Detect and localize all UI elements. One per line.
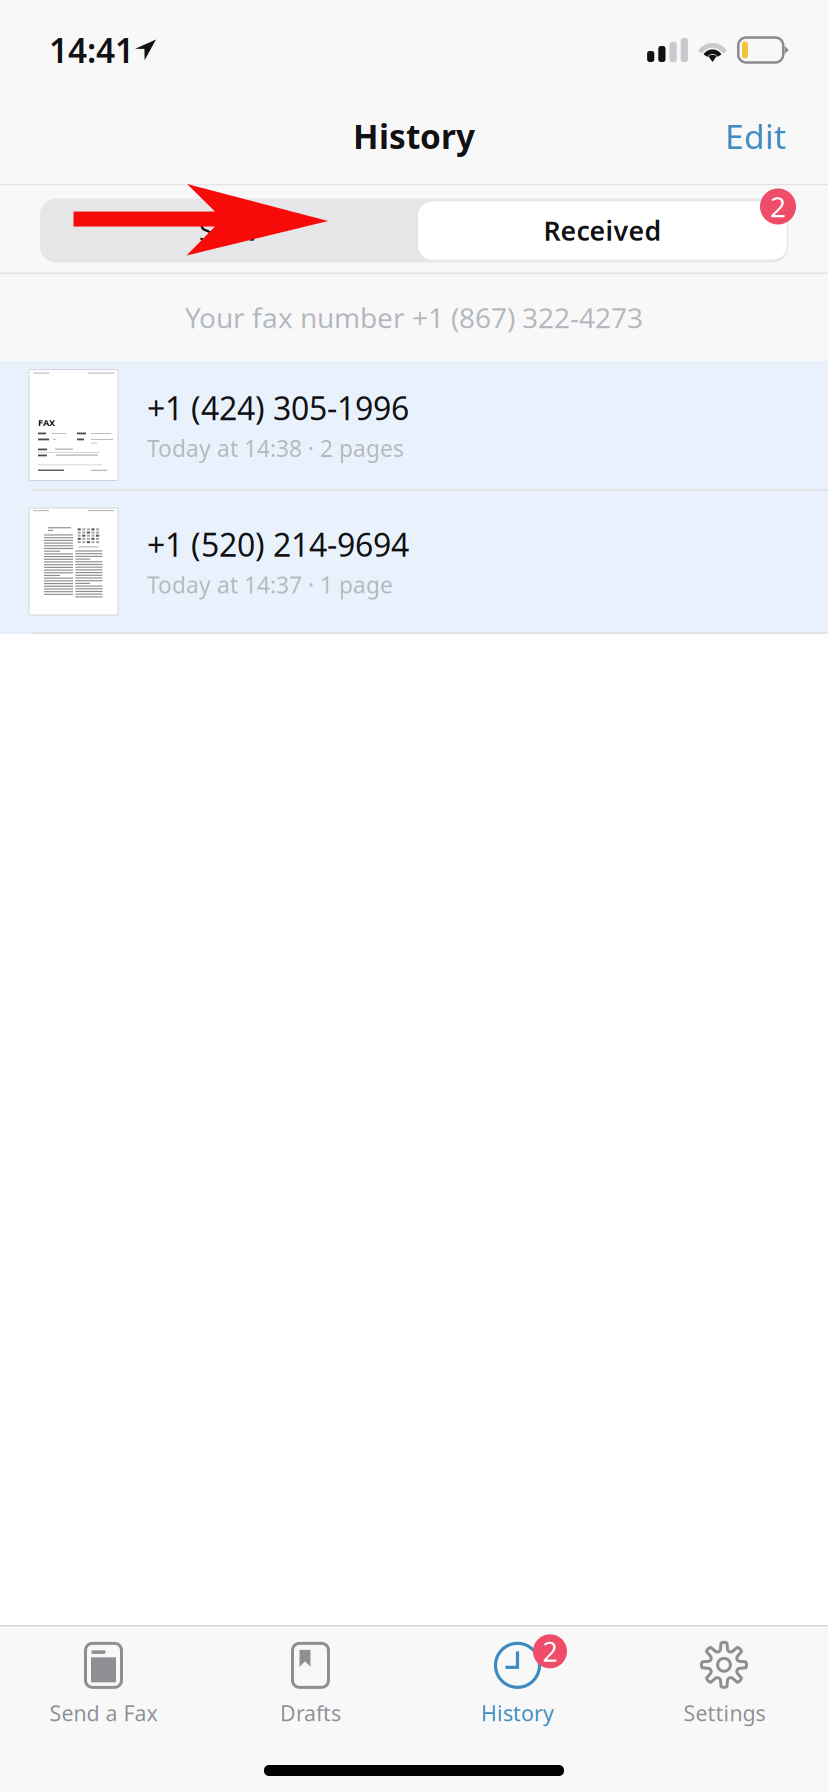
button[interactable]: Sent [40, 198, 414, 262]
staticText: History [353, 114, 475, 158]
staticText: +1 (424) 305-1996 [147, 387, 409, 429]
staticText: Settings [683, 1699, 765, 1727]
button[interactable]: Settings [621, 1636, 828, 1732]
staticText: +1 (520) 214-9694 [147, 523, 409, 566]
button[interactable]: +1 (520) 214-9694 [0, 491, 828, 634]
staticText: Drafts [280, 1699, 341, 1727]
staticText: 14:41 [49, 28, 134, 72]
button[interactable]: Send a Fax [0, 1636, 207, 1732]
staticText: 2 [542, 1634, 557, 1669]
staticText: 2 [770, 188, 786, 225]
staticText: Received [543, 213, 661, 248]
staticText: History [481, 1699, 554, 1727]
staticText: Sent [199, 213, 255, 248]
button[interactable]: Drafts [207, 1636, 414, 1732]
staticText: FAX [38, 416, 55, 429]
staticText: Your fax number +1 (867) 322-4273 [185, 299, 643, 336]
staticText: Today at 14:38 · 2 pages [147, 433, 404, 463]
staticText: Send a Fax [49, 1699, 157, 1727]
button[interactable]: Edit [703, 96, 808, 176]
button[interactable]: FAX [0, 361, 828, 491]
staticText: Edit [725, 114, 786, 158]
staticText: Today at 14:37 · 1 page [147, 570, 393, 600]
button[interactable]: 2 [414, 1636, 621, 1732]
button[interactable]: Received [414, 201, 788, 259]
